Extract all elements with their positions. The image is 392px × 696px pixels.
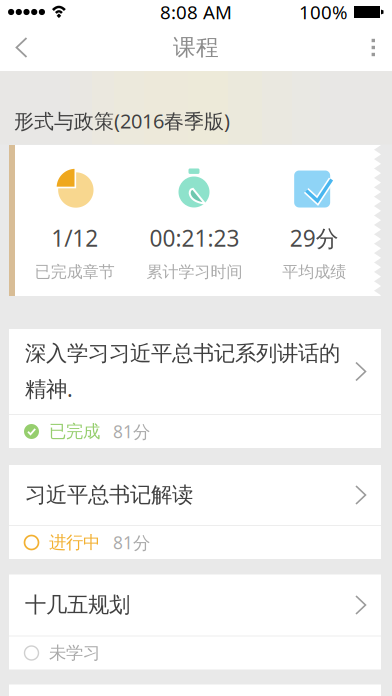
- staticText: 未学习: [49, 642, 100, 664]
- button[interactable]: Back: [0, 24, 44, 71]
- staticText: 深入学习习近平总书记系列讲话的精神.: [25, 340, 340, 403]
- staticText: 00:21:23: [149, 223, 239, 253]
- staticText: 1/12: [51, 223, 98, 253]
- staticText: 累计学习时间: [146, 262, 242, 282]
- staticText: 已完成章节: [35, 262, 115, 282]
- staticText: 81分: [113, 531, 150, 554]
- button[interactable]: 深入学习习近平总书记系列讲话的精神.: [9, 329, 381, 448]
- staticText: 已完成: [49, 421, 100, 442]
- button[interactable]: 十几五规划: [9, 574, 381, 669]
- staticText: 8:08 AM: [160, 0, 232, 24]
- staticText: 平均成绩: [282, 262, 346, 282]
- button[interactable]: More: [356, 24, 392, 71]
- button[interactable]: 习近平总书记解读: [9, 465, 381, 559]
- staticText: 课程: [173, 34, 219, 61]
- staticText: 29分: [290, 223, 339, 253]
- staticText: 100%: [299, 0, 348, 24]
- staticText: 形式与政策(2016春季版): [14, 107, 230, 134]
- staticText: 进行中: [49, 532, 100, 553]
- staticText: 习近平总书记解读: [25, 482, 193, 508]
- button[interactable]: 全面从严治党: [9, 684, 381, 696]
- staticText: 十几五规划: [25, 592, 130, 618]
- staticText: 81分: [113, 420, 150, 443]
